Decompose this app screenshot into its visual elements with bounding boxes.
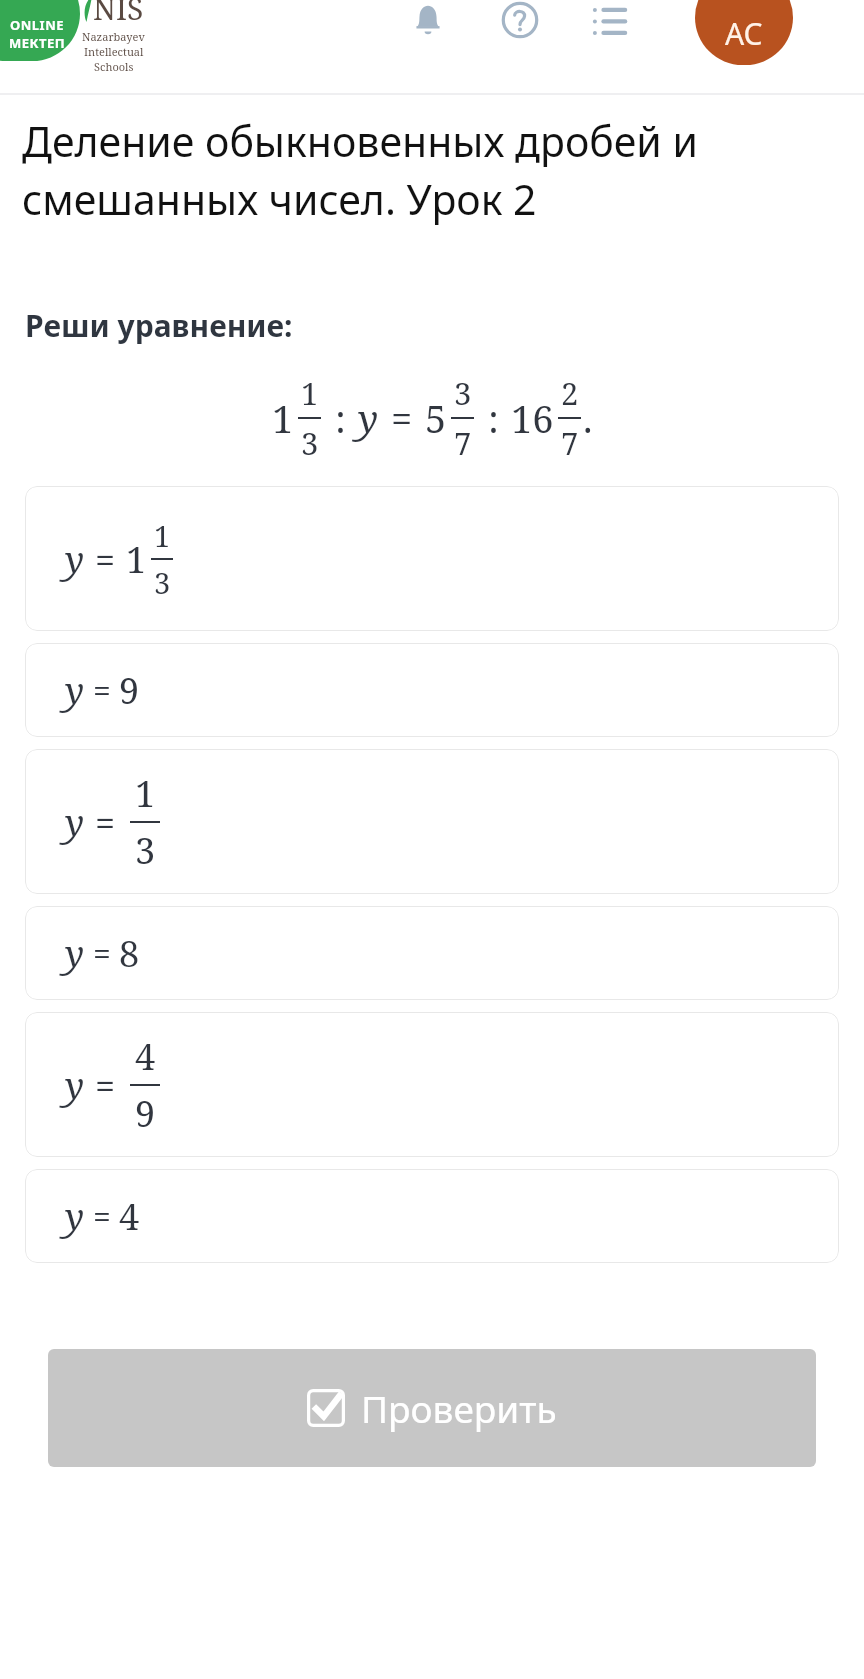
button[interactable]: y <box>25 643 839 737</box>
button[interactable]: Online Mektep <box>0 0 80 61</box>
staticText: Деление обыкновенных дробей и смешанных … <box>22 113 842 227</box>
staticText: 3 <box>454 372 472 414</box>
button[interactable]: Help <box>492 0 548 48</box>
staticText: 8 <box>119 929 140 978</box>
button[interactable]: y <box>25 486 839 631</box>
staticText: y <box>65 1061 85 1110</box>
staticText: Intellectual <box>84 44 144 59</box>
staticText: Реши уравнение: <box>25 305 293 346</box>
button[interactable]: y <box>25 1169 839 1263</box>
staticText: = <box>93 932 111 976</box>
staticText: 1 <box>135 769 156 818</box>
button[interactable]: y <box>25 1012 839 1157</box>
staticText: AC <box>725 13 763 54</box>
button[interactable]: y <box>25 749 839 894</box>
staticText: y <box>65 929 85 978</box>
staticText: y <box>65 1192 85 1241</box>
staticText: Проверить <box>361 1383 557 1433</box>
button[interactable]: y <box>25 906 839 1000</box>
button[interactable]: NIS <box>82 0 145 74</box>
staticText: 1 <box>301 372 319 414</box>
staticText: 4 <box>119 1192 140 1241</box>
button[interactable]: Проверить <box>48 1349 816 1467</box>
staticText: 9 <box>135 1089 156 1138</box>
staticText: 1 <box>154 516 171 555</box>
staticText: = <box>95 535 116 584</box>
staticText: = <box>391 392 413 444</box>
staticText: 1 <box>272 392 294 444</box>
staticText: = <box>95 1061 116 1110</box>
staticText: : <box>488 392 499 444</box>
staticText: NIS <box>93 0 144 29</box>
staticText: 7 <box>561 422 579 464</box>
button[interactable]: Notifications <box>400 0 456 48</box>
staticText: y <box>358 392 379 444</box>
staticText: 3 <box>135 826 156 875</box>
button[interactable]: Profile AC <box>695 0 793 65</box>
staticText: 3 <box>301 422 319 464</box>
staticText: y <box>65 666 85 715</box>
staticText: 3 <box>154 563 171 602</box>
staticText: = <box>95 798 116 847</box>
staticText: 4 <box>135 1032 156 1081</box>
staticText: 9 <box>119 666 140 715</box>
staticText: . <box>583 392 593 444</box>
staticText: : <box>335 392 346 444</box>
staticText: y <box>65 535 85 584</box>
staticText: 5 <box>425 392 447 444</box>
staticText: = <box>93 1195 111 1239</box>
staticText: ONLINE <box>10 16 65 34</box>
staticText: 7 <box>454 422 472 464</box>
staticText: = <box>93 669 111 713</box>
staticText: 16 <box>511 392 554 444</box>
staticText: Nazarbayev <box>82 29 145 44</box>
staticText: y <box>65 798 85 847</box>
button[interactable]: Menu <box>582 0 638 48</box>
staticText: Schools <box>94 59 134 74</box>
staticText: 2 <box>561 372 579 414</box>
staticText: МЕКТЕП <box>9 34 66 52</box>
staticText: 1 <box>126 535 147 584</box>
